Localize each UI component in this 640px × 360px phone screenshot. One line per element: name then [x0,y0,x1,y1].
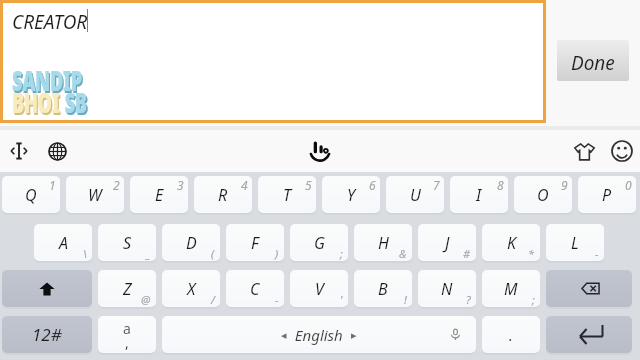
button[interactable]: CREATOR [3,3,543,120]
staticText: H [378,232,389,254]
staticText: E [155,184,164,206]
button[interactable]: B [354,270,412,309]
staticText: C [250,278,260,300]
button[interactable]: Emoji [606,130,638,172]
button[interactable]: Change language [42,130,72,172]
staticText: 0 [625,177,632,193]
button[interactable]: M [482,270,540,309]
staticText: ) [275,246,279,261]
button[interactable]: Enter [546,316,632,355]
button[interactable]: Z [98,270,156,309]
staticText: Z [123,278,132,300]
staticText: , [125,333,129,352]
staticText: V [315,278,324,300]
staticText: 7 [433,177,440,193]
staticText: / [211,292,215,307]
button[interactable]: Shift [2,270,92,309]
button[interactable]: W [66,176,124,215]
staticText: O [537,184,549,206]
button[interactable]: Move cursor [4,130,34,172]
staticText: & [399,246,407,261]
button[interactable]: 12# [2,316,92,355]
staticText: Done [571,50,615,76]
button[interactable]: U [386,176,444,215]
staticText: . [509,325,513,345]
staticText: - [595,246,599,261]
staticText: ; [340,246,343,261]
button[interactable]: S [98,224,156,263]
button[interactable]: C [226,270,284,309]
staticText: I [476,184,482,206]
staticText: Q [25,184,37,206]
button[interactable]: L [546,224,604,263]
staticText: D [186,232,197,254]
button[interactable]: K [482,224,540,263]
staticText: English [287,325,351,345]
button[interactable]: A [34,224,92,263]
button[interactable]: J [418,224,476,263]
staticText: 5 [305,177,312,193]
button[interactable]: R [194,176,252,215]
staticText: U [410,184,421,206]
button[interactable]: Q [2,176,60,215]
button[interactable]: Backspace [546,270,632,309]
button[interactable]: P [578,176,636,215]
button[interactable]: X [162,270,220,309]
staticText: J [445,232,450,254]
staticText: ◂ [281,329,287,342]
button[interactable]: I [450,176,508,215]
staticText: ( [211,246,215,261]
button[interactable]: Space [162,316,476,355]
button[interactable]: F [226,224,284,263]
staticText: N [441,278,453,300]
staticText: @ [141,292,151,307]
button[interactable]: N [418,270,476,309]
staticText: 4 [241,177,248,193]
staticText: 9 [561,177,568,193]
button[interactable]: a [98,316,156,355]
staticText: R [218,184,228,206]
staticText: 12# [32,323,62,346]
staticText: ; [532,292,535,307]
staticText: ! [404,292,407,307]
staticText: BHOI [13,85,61,123]
staticText: K [507,232,516,254]
button[interactable]: Y [322,176,380,215]
staticText: ' [340,292,343,307]
button[interactable]: D [162,224,220,263]
button[interactable]: E [130,176,188,215]
staticText: L [571,232,579,254]
staticText: 3 [177,177,184,193]
staticText: BHOI [12,83,59,121]
staticText: a [123,319,131,338]
staticText: F [251,232,259,254]
button[interactable]: H [354,224,412,263]
staticText: M [504,278,518,300]
staticText: X [187,278,196,300]
staticText: SB [66,85,89,123]
button[interactable]: Keyboard menu [300,130,340,172]
staticText: A [59,232,68,254]
staticText: W [88,184,102,206]
staticText: P [602,184,612,206]
button[interactable]: V [290,270,348,309]
staticText: SB [65,83,87,121]
staticText: 8 [497,177,504,193]
staticText: CREATOR [12,9,88,35]
button[interactable]: . [482,316,540,355]
staticText: S [123,232,132,254]
staticText: ▸ [351,329,357,342]
staticText: * [528,246,535,261]
staticText: 1 [49,177,56,193]
staticText: Y [347,184,356,206]
button[interactable]: Themes [568,130,600,172]
staticText: - [275,292,279,307]
button[interactable]: Done [557,40,629,81]
button[interactable]: O [514,176,572,215]
staticText: 6 [369,177,376,193]
button[interactable]: G [290,224,348,263]
staticText: 2 [113,177,120,193]
staticText: SANDIP [12,61,82,99]
staticText: G [314,232,325,254]
button[interactable]: T [258,176,316,215]
